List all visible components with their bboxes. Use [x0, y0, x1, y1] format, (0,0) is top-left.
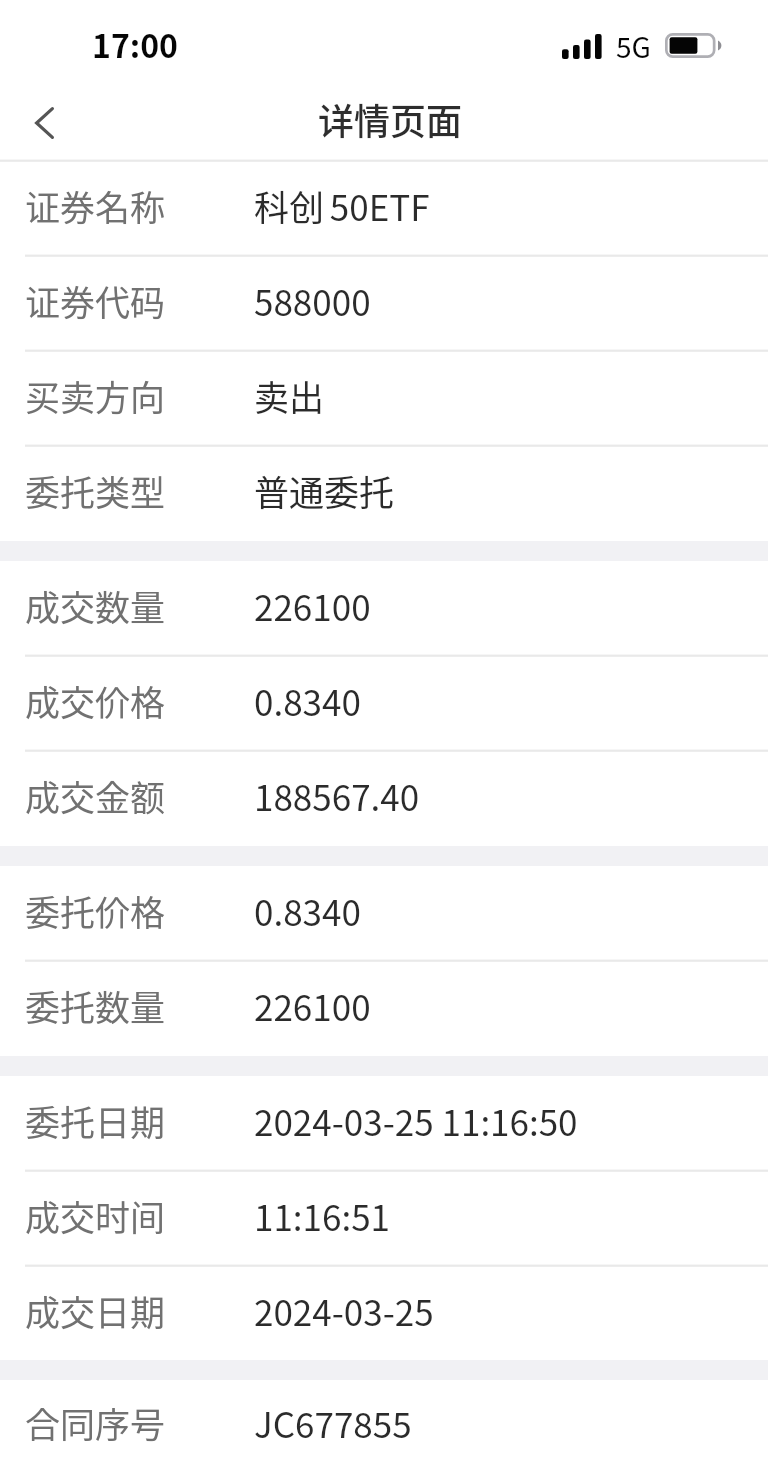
staticText: 委托日期 [25, 1095, 254, 1146]
staticText: 5G [616, 26, 651, 67]
other: Battery [665, 33, 723, 60]
staticText: 588000 [254, 275, 371, 326]
button[interactable]: 合同序号 [0, 1380, 768, 1471]
staticText: 证券名称 [25, 180, 254, 231]
staticText: 普通委托 [254, 465, 395, 516]
staticText: 226100 [254, 580, 371, 631]
button[interactable]: 委托数量 [0, 961, 768, 1056]
staticText: 委托价格 [25, 885, 254, 936]
button[interactable]: 证券名称 [0, 161, 768, 256]
staticText: 成交价格 [25, 675, 254, 726]
button[interactable]: 成交时间 [0, 1171, 768, 1266]
other: Signal strength [562, 33, 603, 59]
staticText: 0.8340 [254, 885, 361, 936]
button[interactable]: 成交金额 [0, 751, 768, 846]
staticText: 卖出 [254, 370, 325, 421]
staticText: 详情页面 [318, 93, 463, 145]
button[interactable]: 证券代码 [0, 256, 768, 351]
staticText: 0.8340 [254, 675, 361, 726]
staticText: 科创 50ETF [254, 180, 430, 231]
staticText: 委托数量 [25, 980, 254, 1031]
staticText: 委托类型 [25, 465, 254, 516]
button[interactable]: 委托日期 [0, 1076, 768, 1171]
staticText: 成交数量 [25, 580, 254, 631]
staticText: 合同序号 [25, 1397, 254, 1448]
staticText: 成交日期 [25, 1285, 254, 1336]
staticText: 2024-03-25 11:16:50 [254, 1095, 578, 1146]
button[interactable]: 委托价格 [0, 866, 768, 961]
staticText: JC677855 [254, 1397, 412, 1448]
staticText: 188567.40 [254, 770, 420, 821]
staticText: 2024-03-25 [254, 1285, 434, 1336]
staticText: 17:00 [92, 21, 178, 67]
staticText: 买卖方向 [25, 370, 254, 421]
staticText: 226100 [254, 980, 371, 1031]
button[interactable]: 委托类型 [0, 446, 768, 541]
button[interactable]: 成交价格 [0, 656, 768, 751]
button[interactable]: 成交数量 [0, 561, 768, 656]
button[interactable]: Back [0, 88, 88, 160]
button[interactable]: 买卖方向 [0, 351, 768, 446]
staticText: 成交时间 [25, 1190, 254, 1241]
staticText: 11:16:51 [254, 1190, 391, 1241]
staticText: 证券代码 [25, 275, 254, 326]
staticText: 成交金额 [25, 770, 254, 821]
button[interactable]: 成交日期 [0, 1266, 768, 1360]
